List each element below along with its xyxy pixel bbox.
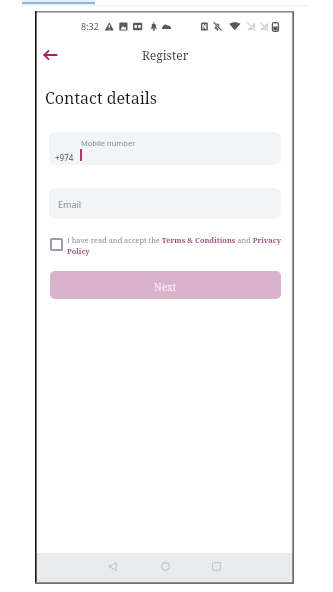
button[interactable]: Home	[154, 555, 177, 578]
button[interactable]: Back	[38, 44, 62, 66]
button[interactable]: I have read and accept the Terms & Condi…	[67, 235, 282, 256]
staticText: Contact details	[45, 87, 158, 109]
staticText: Register	[142, 47, 189, 63]
button[interactable]: Recent apps	[205, 555, 228, 578]
button[interactable]: Back	[101, 555, 124, 578]
button[interactable]: Mobile number	[49, 132, 281, 165]
staticText: Email	[58, 198, 82, 210]
staticText: Mobile number	[81, 138, 136, 148]
staticText: 8:32	[81, 20, 99, 32]
button[interactable]: Accept terms and conditions	[50, 238, 63, 251]
staticText: I have read and accept the Terms & Condi…	[67, 235, 282, 256]
staticText: +974	[55, 152, 74, 163]
button[interactable]: Email	[49, 188, 281, 219]
staticText: Next	[154, 280, 177, 294]
button[interactable]: Next	[50, 271, 281, 299]
